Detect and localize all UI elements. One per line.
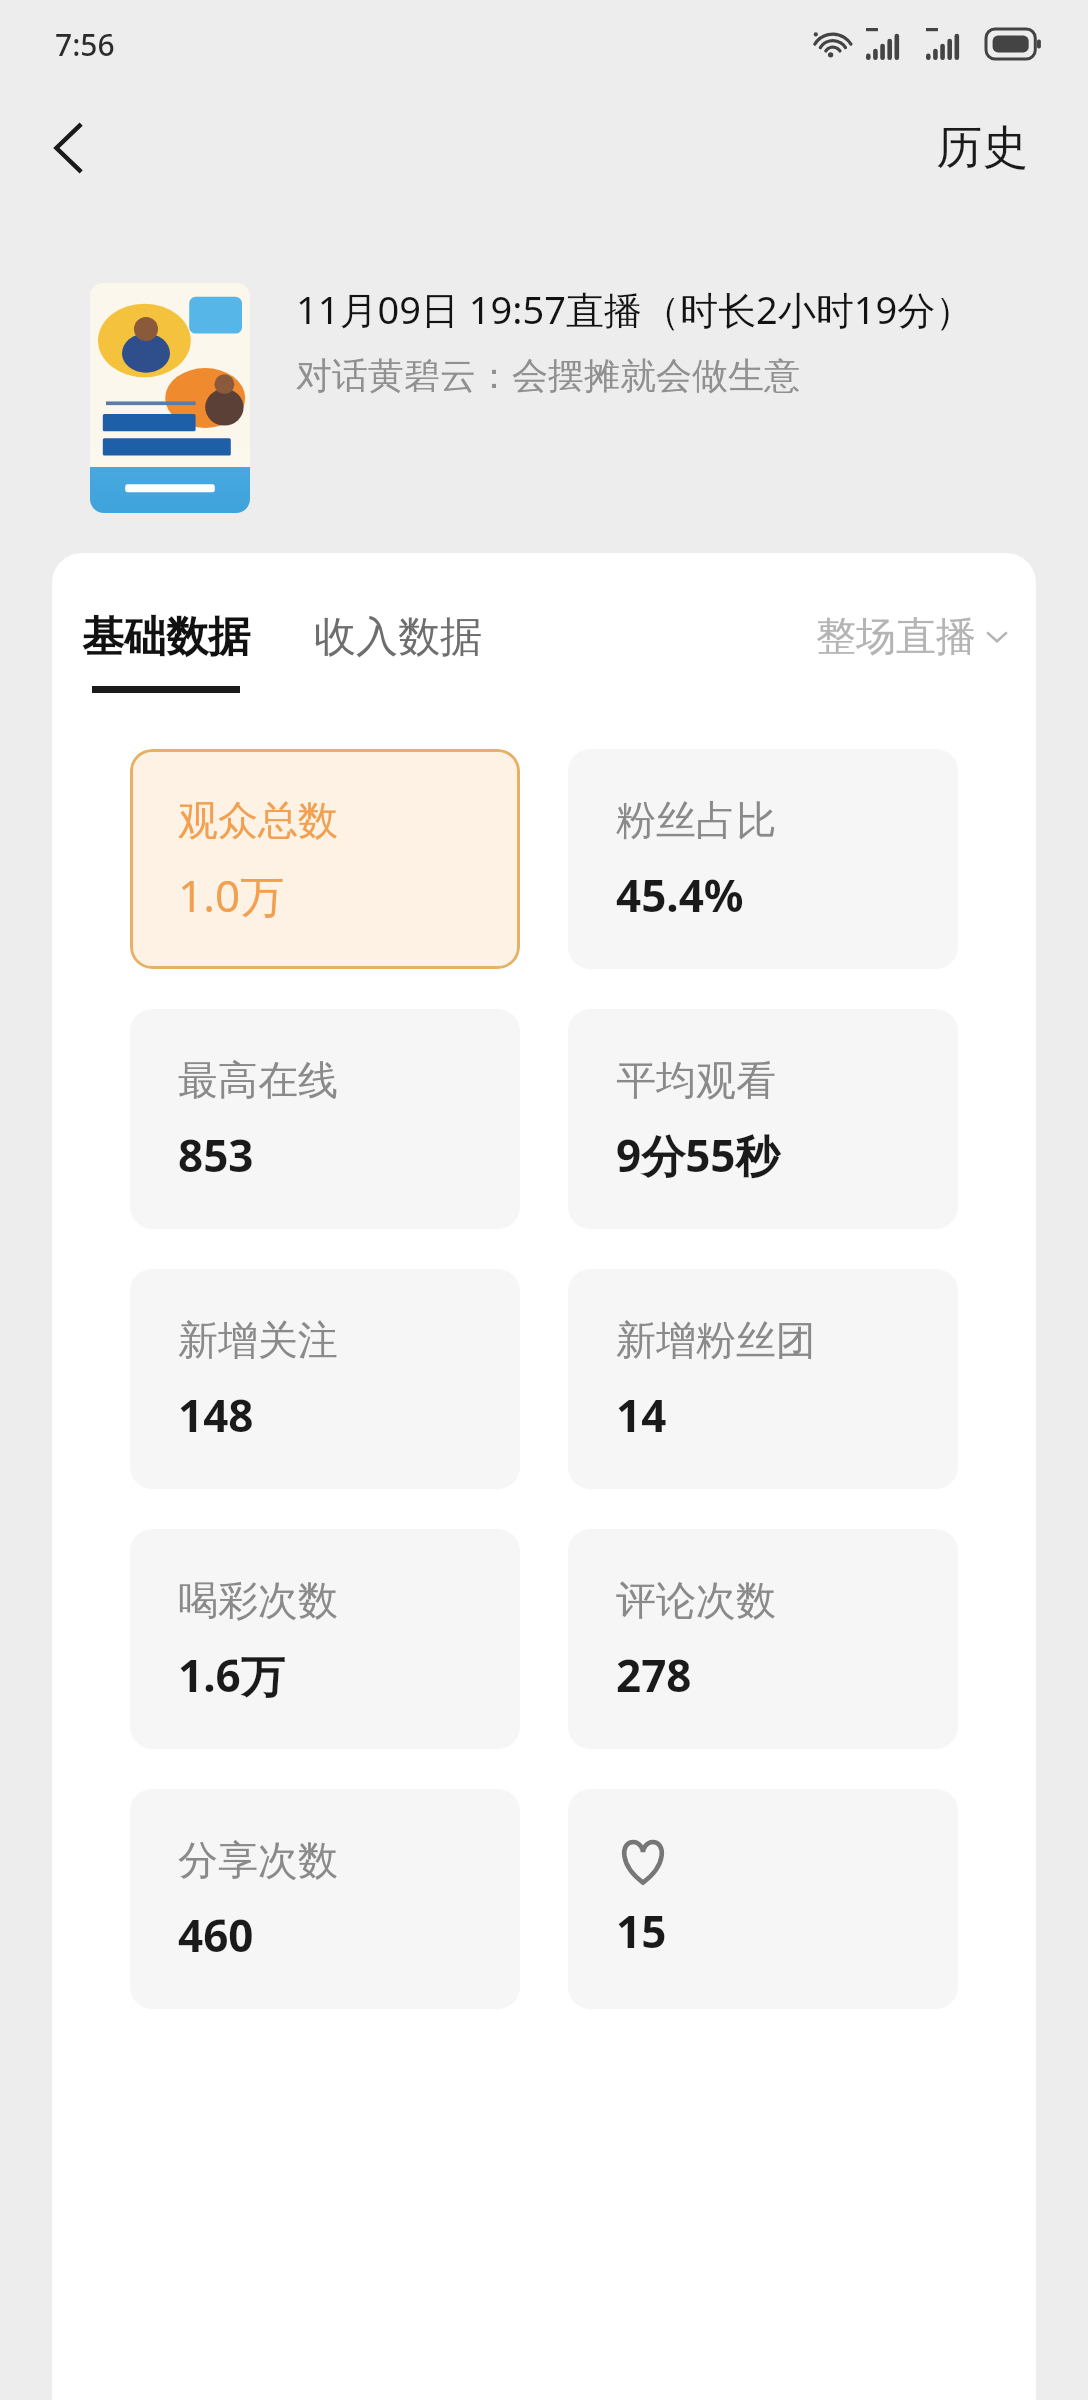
staticText: 1.0万 — [178, 865, 285, 925]
button[interactable]: 分享次数 — [130, 1789, 520, 2009]
other: Likes — [616, 1835, 670, 1889]
staticText: 14 — [616, 1385, 667, 1445]
staticText: 平均观看 — [616, 1055, 776, 1105]
button[interactable]: 整场直播 — [816, 611, 1010, 661]
staticText: 新增关注 — [178, 1315, 338, 1365]
button[interactable]: 基础数据 — [78, 611, 254, 693]
staticText: 7:56 — [55, 24, 115, 65]
button[interactable]: 收入数据 — [310, 611, 486, 664]
staticText: 148 — [178, 1385, 254, 1445]
staticText: 新增粉丝团 — [616, 1315, 816, 1365]
staticText: 评论次数 — [616, 1575, 776, 1625]
button[interactable]: 喝彩次数 — [130, 1529, 520, 1749]
button[interactable]: 新增粉丝团 — [568, 1269, 958, 1489]
staticText: 喝彩次数 — [178, 1575, 338, 1625]
button[interactable]: 最高在线 — [130, 1009, 520, 1229]
staticText: 1.6万 — [178, 1645, 285, 1705]
staticText: 45.4% — [616, 865, 744, 925]
staticText: 分享次数 — [178, 1835, 338, 1885]
staticText: 15 — [616, 1901, 667, 1961]
staticText: 9分55秒 — [616, 1125, 780, 1185]
staticText: 基础数据 — [82, 611, 250, 664]
button[interactable]: 评论次数 — [568, 1529, 958, 1749]
button[interactable]: Likes — [568, 1789, 958, 2009]
staticText: 最高在线 — [178, 1055, 338, 1105]
staticText: 对话黄碧云：会摆摊就会做生意 — [296, 353, 800, 398]
staticText: 粉丝占比 — [616, 795, 776, 845]
staticText: 收入数据 — [314, 611, 482, 664]
staticText: 11月09日 19:57直播（时长2小时19分） — [296, 283, 974, 335]
staticText: 853 — [178, 1125, 254, 1185]
staticText: 460 — [178, 1905, 254, 1965]
button[interactable]: 平均观看 — [568, 1009, 958, 1229]
staticText: 278 — [616, 1645, 692, 1705]
button[interactable]: 新增关注 — [130, 1269, 520, 1489]
staticText: 历史 — [936, 119, 1028, 177]
button[interactable]: 观众总数 — [130, 749, 520, 969]
button[interactable]: Back — [30, 108, 110, 188]
button[interactable]: Live replay thumbnail — [90, 283, 250, 513]
staticText: 观众总数 — [178, 795, 338, 845]
button[interactable]: 粉丝占比 — [568, 749, 958, 969]
staticText: 整场直播 — [816, 611, 976, 661]
